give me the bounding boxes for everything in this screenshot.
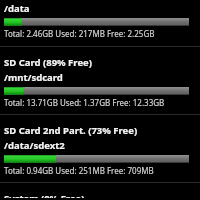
staticText: Total: 2.46GB Used: 217MB Free: 2.25GB bbox=[4, 28, 155, 39]
staticText: /data/sdext2 bbox=[4, 139, 65, 152]
staticText: SD Card 2nd Part. (73% Free) bbox=[4, 124, 138, 137]
staticText: System (0% Free) bbox=[4, 192, 85, 198]
staticText: Total: 13.71GB Used: 1.37GB Free: 12.33G… bbox=[4, 97, 165, 108]
button[interactable]: SD Card (89% Free) bbox=[0, 54, 200, 110]
button[interactable]: SD Card 2nd Part. (73% Free) bbox=[0, 122, 200, 178]
button[interactable]: /data bbox=[0, 0, 200, 41]
button[interactable]: System (0% Free) bbox=[0, 190, 200, 200]
staticText: /data bbox=[4, 2, 30, 15]
staticText: SD Card (89% Free) bbox=[4, 56, 92, 69]
staticText: /mnt/sdcard bbox=[4, 71, 63, 84]
staticText: Total: 0.94GB Used: 251MB Free: 709MB bbox=[4, 165, 154, 176]
